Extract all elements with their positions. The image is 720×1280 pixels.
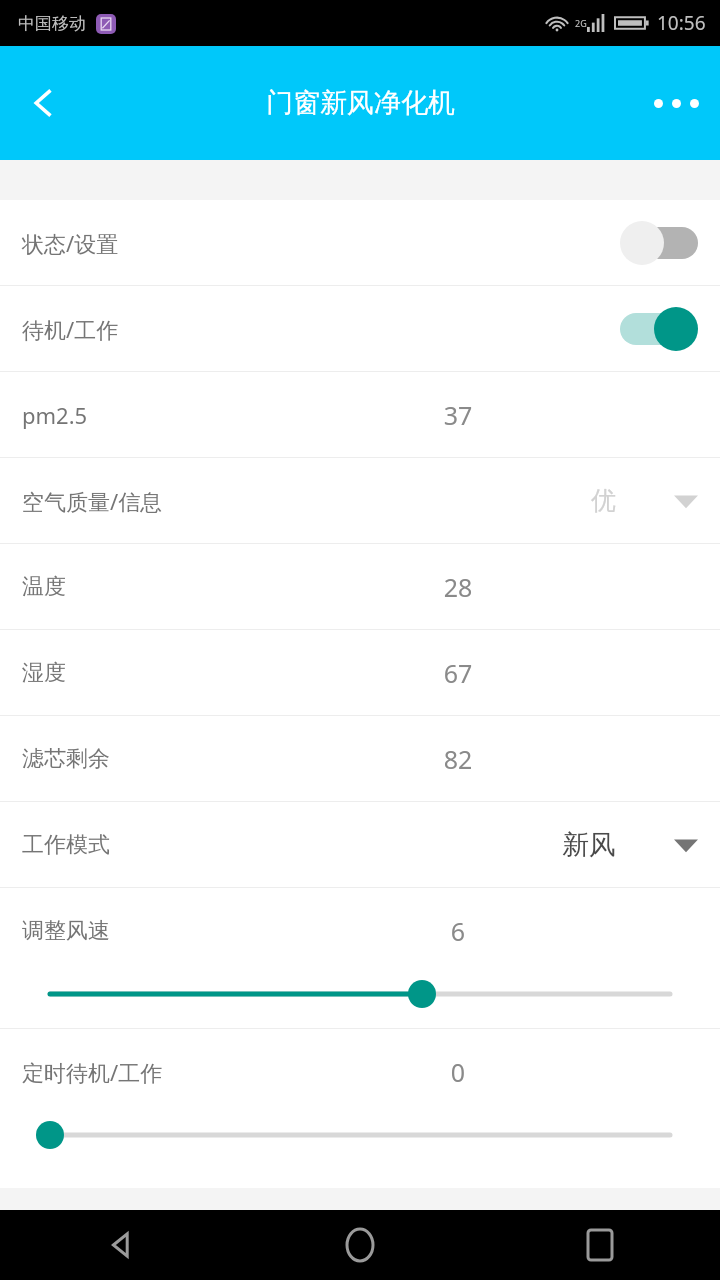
button[interactable]: 状态/设置 — [0, 200, 720, 285]
staticText: 6 — [398, 914, 518, 948]
button[interactable]: 调整风速 — [0, 888, 720, 1028]
staticText: 82 — [398, 742, 518, 776]
button[interactable]: 定时待机/工作 — [0, 1029, 720, 1169]
staticText: pm2.5 — [22, 400, 88, 430]
staticText: 湿度 — [22, 659, 66, 687]
staticText: 滤芯剩余 — [22, 745, 110, 773]
button[interactable]: 工作模式 — [0, 802, 720, 887]
staticText: 门窗新风净化机 — [266, 86, 455, 120]
staticText: 67 — [398, 656, 518, 690]
button[interactable]: 空气质量/信息 — [0, 458, 720, 543]
button[interactable]: pm2.5 — [0, 372, 720, 457]
staticText: 28 — [398, 570, 518, 604]
staticText: 空气质量/信息 — [22, 486, 163, 516]
button[interactable]: 滤芯剩余 — [0, 716, 720, 801]
button[interactable]: Recent apps — [480, 1210, 720, 1280]
staticText: 新风 — [562, 828, 616, 862]
button[interactable]: Home — [240, 1210, 480, 1280]
staticText: 37 — [398, 398, 518, 432]
staticText: 工作模式 — [22, 831, 110, 859]
staticText: 状态/设置 — [22, 228, 119, 258]
button[interactable]: 湿度 — [0, 630, 720, 715]
button[interactable]: 待机/工作 — [0, 286, 720, 371]
staticText: 待机/工作 — [22, 314, 119, 344]
staticText: 定时待机/工作 — [22, 1057, 163, 1087]
staticText: 0 — [398, 1055, 518, 1089]
button[interactable]: Back — [0, 1210, 240, 1280]
staticText: 优 — [591, 485, 616, 516]
staticText: 中国移动 — [18, 13, 86, 34]
staticText: 调整风速 — [22, 917, 110, 945]
button[interactable]: 温度 — [0, 544, 720, 629]
staticText: 2G — [575, 17, 587, 29]
staticText: 10:56 — [657, 10, 706, 36]
staticText: 温度 — [22, 573, 66, 601]
button[interactable]: Back — [0, 60, 86, 146]
button[interactable]: More options — [632, 59, 720, 147]
